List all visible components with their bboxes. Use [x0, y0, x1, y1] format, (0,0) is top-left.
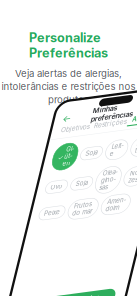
staticText: intolerâncias e restrições nos: [1, 81, 135, 92]
staticText: produtos: [48, 94, 89, 105]
staticText: ←: [67, 115, 76, 127]
staticText: Peixe: [72, 216, 88, 223]
staticText: Objetivos: [69, 129, 98, 137]
staticText: Minhas preferências: [97, 112, 137, 130]
staticText: Soja: [98, 188, 110, 196]
staticText: Oleaginosas: [123, 181, 137, 203]
staticText: Frutos do mar: [102, 212, 122, 227]
staticText: Ovo: [72, 188, 84, 196]
staticText: ✓: [72, 158, 77, 165]
staticText: Glúten: [79, 150, 87, 172]
staticText: Leite: [126, 154, 137, 169]
staticText: Soja: [100, 158, 112, 165]
staticText: Veja alertas de alergias,: [15, 68, 122, 79]
staticText: Personalize Preferências: [29, 30, 108, 61]
